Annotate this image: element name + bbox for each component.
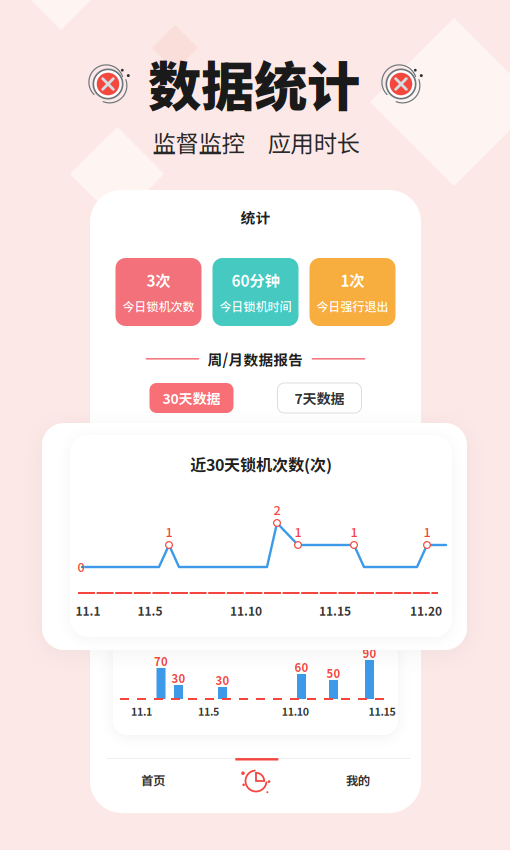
staticText: 1 xyxy=(294,522,301,541)
staticText: 7天数据 xyxy=(294,388,344,408)
staticText: 今日锁机时间 xyxy=(219,297,291,315)
staticText: 11.5 xyxy=(198,703,219,719)
staticText: 1 xyxy=(165,522,172,541)
staticText: 50 xyxy=(326,665,340,681)
staticText: 今日锁机次数 xyxy=(122,297,194,315)
staticText: 我的 xyxy=(346,771,370,789)
button[interactable]: 我的 xyxy=(303,753,413,807)
staticText: 11.15 xyxy=(319,602,351,619)
staticText: 周/月数据报告 xyxy=(207,348,303,370)
staticText: 11.5 xyxy=(137,602,162,619)
staticText: 11.10 xyxy=(230,602,262,619)
staticText: 统计 xyxy=(240,206,270,228)
staticText: 2 xyxy=(273,500,280,519)
staticText: 70 xyxy=(154,653,168,669)
staticText: 30 xyxy=(215,672,229,688)
staticText: 60分钟 xyxy=(231,269,279,291)
staticText: 1次 xyxy=(340,269,364,291)
staticText: 1 xyxy=(350,522,357,541)
staticText: 11.15 xyxy=(368,703,395,719)
button[interactable]: 60分钟 xyxy=(212,258,298,326)
button[interactable]: 7天数据 xyxy=(277,383,361,413)
staticText: 90 xyxy=(362,645,376,661)
staticText: 30 xyxy=(171,670,185,686)
staticText: 11.20 xyxy=(410,602,442,619)
button[interactable]: 统计 xyxy=(201,754,311,808)
button[interactable]: 30天数据 xyxy=(149,383,233,413)
staticText: 今日强行退出 xyxy=(316,297,388,315)
staticText: 11.10 xyxy=(282,703,309,719)
staticText: 11.1 xyxy=(75,602,100,619)
staticText: 3次 xyxy=(146,269,170,291)
button[interactable]: 1次 xyxy=(309,258,395,326)
staticText: 30天数据 xyxy=(162,388,220,408)
button[interactable]: 首页 xyxy=(98,753,208,807)
staticText: 0 xyxy=(77,557,84,576)
staticText: 首页 xyxy=(141,771,165,789)
staticText: 11.1 xyxy=(131,703,152,719)
staticText: 1 xyxy=(423,522,430,541)
staticText: 近30天锁机次数(次) xyxy=(190,452,332,476)
staticText: 60 xyxy=(294,659,308,675)
staticText: 数据统计 xyxy=(148,44,360,122)
button[interactable]: 3次 xyxy=(115,258,201,326)
staticText: 监督监控 应用时长 xyxy=(152,125,359,159)
